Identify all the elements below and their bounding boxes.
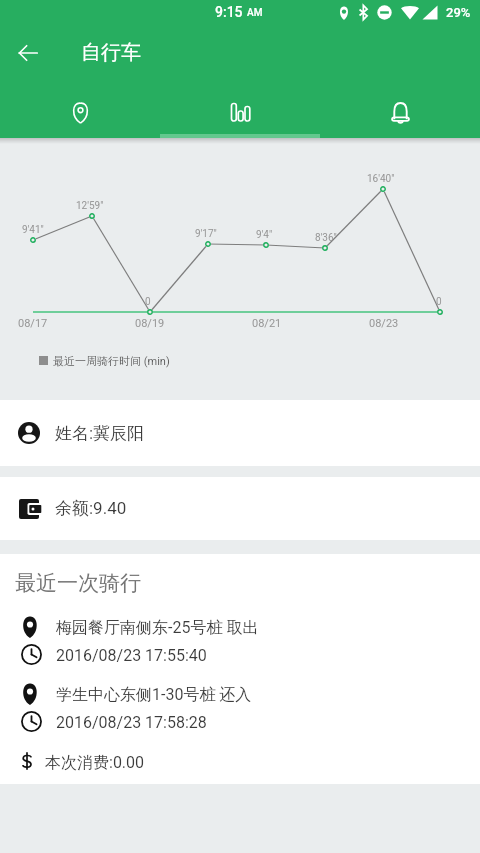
staticText: 08/19 [135, 317, 165, 330]
button[interactable]: 余额:9.40 [0, 477, 480, 540]
staticText: 08/17 [18, 317, 48, 330]
staticText: 9'17" [195, 228, 217, 240]
button[interactable]: Back [0, 24, 56, 81]
staticText: 梅园餐厅南侧东-25号桩 取出 [56, 618, 259, 638]
staticText: 8'36" [315, 232, 337, 244]
staticText: 9'41" [22, 224, 44, 236]
staticText: 0 [436, 296, 442, 308]
staticText: 学生中心东侧1-30号桩 还入 [56, 685, 252, 705]
button[interactable]: Notifications [320, 81, 480, 138]
staticText: 29% [446, 5, 471, 20]
staticText: 9:15 [215, 4, 243, 20]
staticText: 08/21 [252, 317, 282, 330]
staticText: 16'40" [367, 173, 395, 185]
button[interactable]: Location [0, 81, 160, 138]
staticText: 姓名:冀辰阳 [55, 423, 145, 444]
button[interactable]: Statistics [160, 81, 320, 138]
button[interactable]: 姓名:冀辰阳 [0, 400, 480, 466]
staticText: 12'59" [76, 200, 104, 212]
staticText: 9'4" [256, 229, 273, 241]
staticText: 2016/08/23 17:55:40 [56, 646, 207, 665]
staticText: 08/23 [369, 317, 399, 330]
button[interactable]: 最近一次骑行 [0, 554, 480, 784]
staticText: 本次消费:0.00 [45, 753, 145, 773]
staticText: 0 [145, 296, 151, 308]
staticText: 2016/08/23 17:58:28 [56, 713, 207, 732]
staticText: 余额:9.40 [55, 498, 127, 519]
staticText: 最近一次骑行 [15, 570, 141, 596]
staticText: 最近一周骑行时间 (min) [53, 354, 170, 368]
staticText: 自行车 [81, 40, 141, 65]
staticText: AM [247, 7, 263, 19]
